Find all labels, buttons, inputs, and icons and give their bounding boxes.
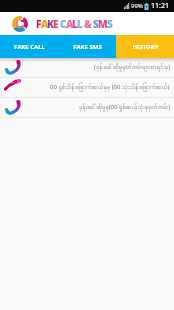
staticText: A [66, 17, 72, 31]
staticText: M [98, 17, 107, 31]
other: Call type [4, 99, 21, 116]
button[interactable]: FAKE CALL [0, 35, 58, 58]
button[interactable]: Call type [0, 58, 174, 77]
staticText: (ဖုန်းခေါ်ဆိုမှုမှတ်တမ်းများစာရင်းခု) [94, 63, 170, 72]
button[interactable]: Call type [0, 98, 174, 117]
staticText: C [60, 17, 66, 31]
staticText: ဖုန်းခေါ်ဆိုမှုခု(00 ရှစ်ဆယ့်သုံးခုမှတ်တ… [79, 103, 170, 112]
staticText: 00 ရှစ်သိန်းခြောက်ဆယ်ခုမှ (00 သုံးသိန်းခ… [50, 83, 170, 92]
staticText: FAKE CALL [14, 43, 45, 51]
staticText: 99% [131, 2, 143, 10]
staticText: F [36, 17, 41, 31]
other: Call type [4, 59, 21, 76]
staticText: S [93, 17, 98, 31]
other: Call type [4, 79, 21, 96]
staticText: L [77, 17, 82, 31]
other: App logo [12, 16, 28, 32]
staticText: S [107, 17, 112, 31]
staticText: K [47, 17, 53, 31]
staticText: A [41, 17, 47, 31]
button[interactable]: Call type [0, 78, 174, 97]
button[interactable]: HISTORY [116, 35, 174, 58]
staticText: 11:21 [151, 1, 169, 11]
button[interactable]: FAKE SMS [58, 35, 116, 58]
staticText: FAKE SMS [73, 43, 102, 51]
staticText: HISTORY [132, 43, 159, 51]
staticText: L [72, 17, 77, 31]
staticText: & [84, 17, 91, 31]
staticText: E [53, 17, 58, 31]
